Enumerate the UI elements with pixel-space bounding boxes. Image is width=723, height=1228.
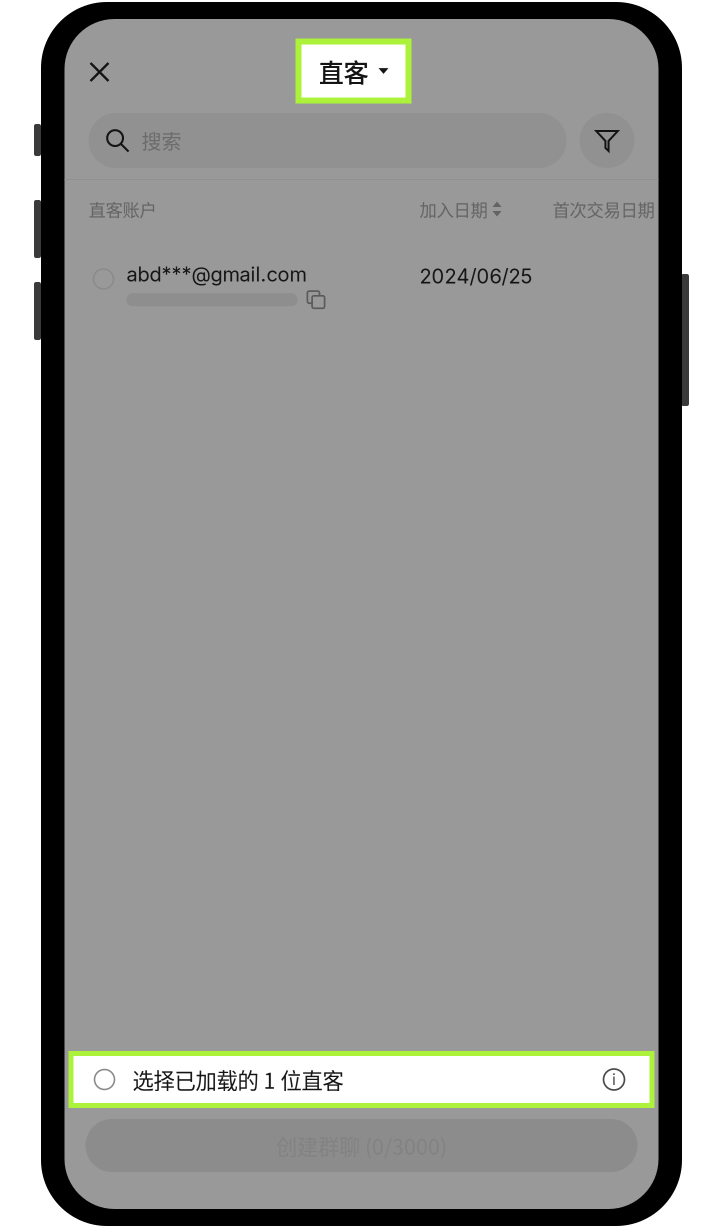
button[interactable]: abd***@gmail.com	[64, 238, 658, 326]
button[interactable]: 搜索	[88, 113, 566, 168]
staticText: 首次交易日期	[552, 196, 654, 222]
staticText: 创建群聊 (0/3000)	[276, 1130, 447, 1161]
staticText: abd***@gmail.com	[126, 262, 306, 286]
staticText: 2024/06/25	[419, 264, 532, 288]
staticText: 选择已加载的 1 位直客	[132, 1064, 343, 1095]
staticText: 直客账户	[88, 196, 156, 222]
staticText: 直客	[318, 53, 368, 89]
staticText: 搜索	[141, 126, 181, 155]
button[interactable]: 选择已加载的 1 位直客	[68, 1051, 654, 1108]
button[interactable]: Filter	[579, 113, 634, 168]
button[interactable]: Close	[76, 49, 122, 95]
staticText: i	[612, 1070, 616, 1089]
button[interactable]: 直客	[295, 38, 411, 103]
staticText: 加入日期	[419, 196, 487, 222]
